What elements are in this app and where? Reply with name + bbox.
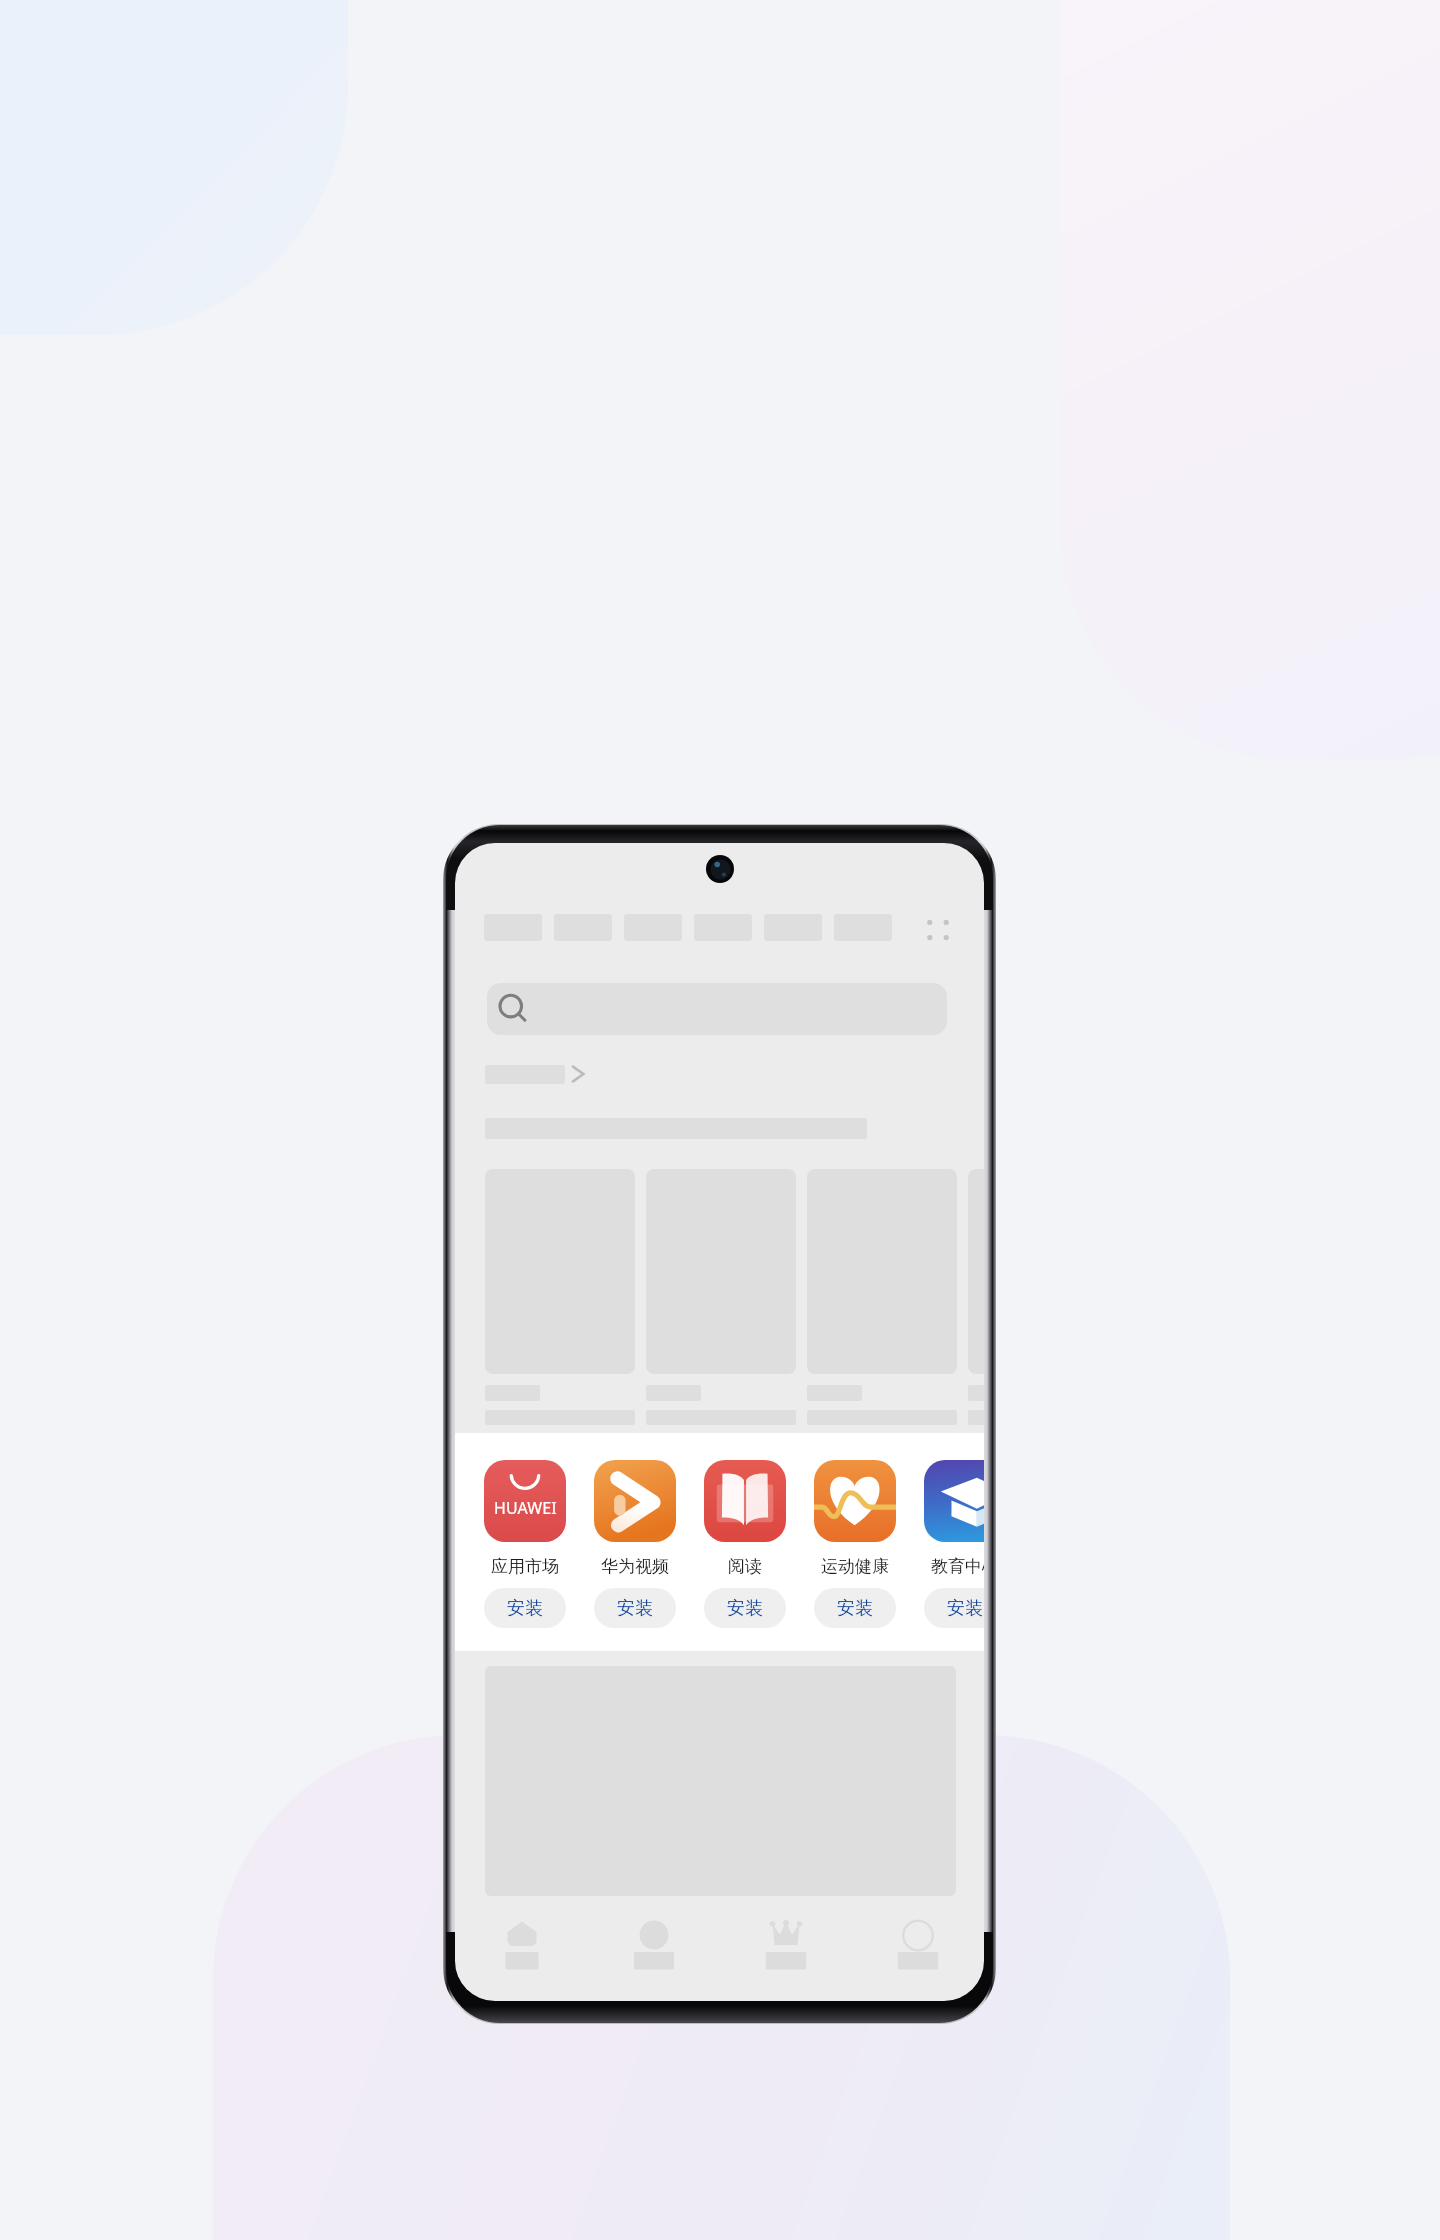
button[interactable]: 阅读 bbox=[704, 1450, 786, 1580]
staticText: 运动健康 bbox=[821, 1556, 889, 1577]
button[interactable]: 安装 bbox=[594, 1588, 676, 1628]
button[interactable]: Account bbox=[852, 1921, 984, 1970]
staticText: 应用市场 bbox=[491, 1556, 559, 1577]
staticText: 安装 bbox=[617, 1597, 653, 1620]
button[interactable]: Search bbox=[487, 983, 947, 1035]
button[interactable]: 应用市场 bbox=[484, 1450, 566, 1580]
button[interactable]: Rewards bbox=[720, 1921, 852, 1970]
button[interactable]: More apps bbox=[920, 912, 956, 948]
button[interactable]: 运动健康 bbox=[814, 1450, 896, 1580]
button[interactable] bbox=[485, 1064, 587, 1084]
staticText: 华为视频 bbox=[601, 1556, 669, 1577]
staticText: 安装 bbox=[837, 1597, 873, 1620]
button[interactable]: 安装 bbox=[814, 1588, 896, 1628]
staticText: 安装 bbox=[507, 1597, 543, 1620]
button[interactable]: Home bbox=[455, 1921, 588, 1970]
button[interactable]: 安装 bbox=[484, 1588, 566, 1628]
button[interactable]: Profile bbox=[588, 1921, 720, 1970]
staticText: 教育中心 bbox=[931, 1556, 984, 1577]
staticText: HUAWEI bbox=[494, 1497, 557, 1519]
staticText: 安装 bbox=[727, 1597, 763, 1620]
staticText: 安装 bbox=[947, 1597, 983, 1620]
button[interactable]: 安装 bbox=[924, 1588, 984, 1628]
staticText: 阅读 bbox=[728, 1556, 762, 1577]
button[interactable]: 安装 bbox=[704, 1588, 786, 1628]
button[interactable]: 华为视频 bbox=[594, 1450, 676, 1580]
button[interactable]: 教育中心 bbox=[924, 1450, 984, 1580]
